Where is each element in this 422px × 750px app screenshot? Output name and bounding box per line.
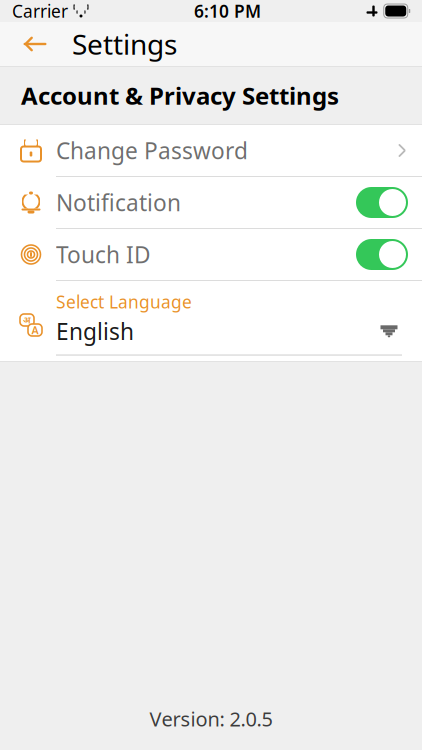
staticText: Touch ID [56, 239, 151, 269]
staticText: Settings [72, 25, 177, 63]
button[interactable]: Back [10, 22, 60, 66]
button[interactable]: Change Password [0, 125, 422, 176]
staticText: अ [23, 314, 31, 326]
button[interactable]: अ [0, 281, 422, 355]
staticText: A [31, 323, 38, 337]
button[interactable]: Touch ID [0, 229, 422, 280]
staticText: Change Password [56, 135, 248, 165]
button[interactable]: Notification [0, 177, 422, 228]
staticText: 6:10 PM [194, 0, 261, 22]
staticText: Select Language [56, 290, 192, 313]
staticText: Version: 2.0.5 [149, 705, 272, 732]
staticText: Notification [56, 187, 181, 217]
staticText: English [56, 316, 134, 346]
staticText: Carrier [12, 0, 68, 22]
staticText: Account & Privacy Settings [21, 80, 339, 111]
